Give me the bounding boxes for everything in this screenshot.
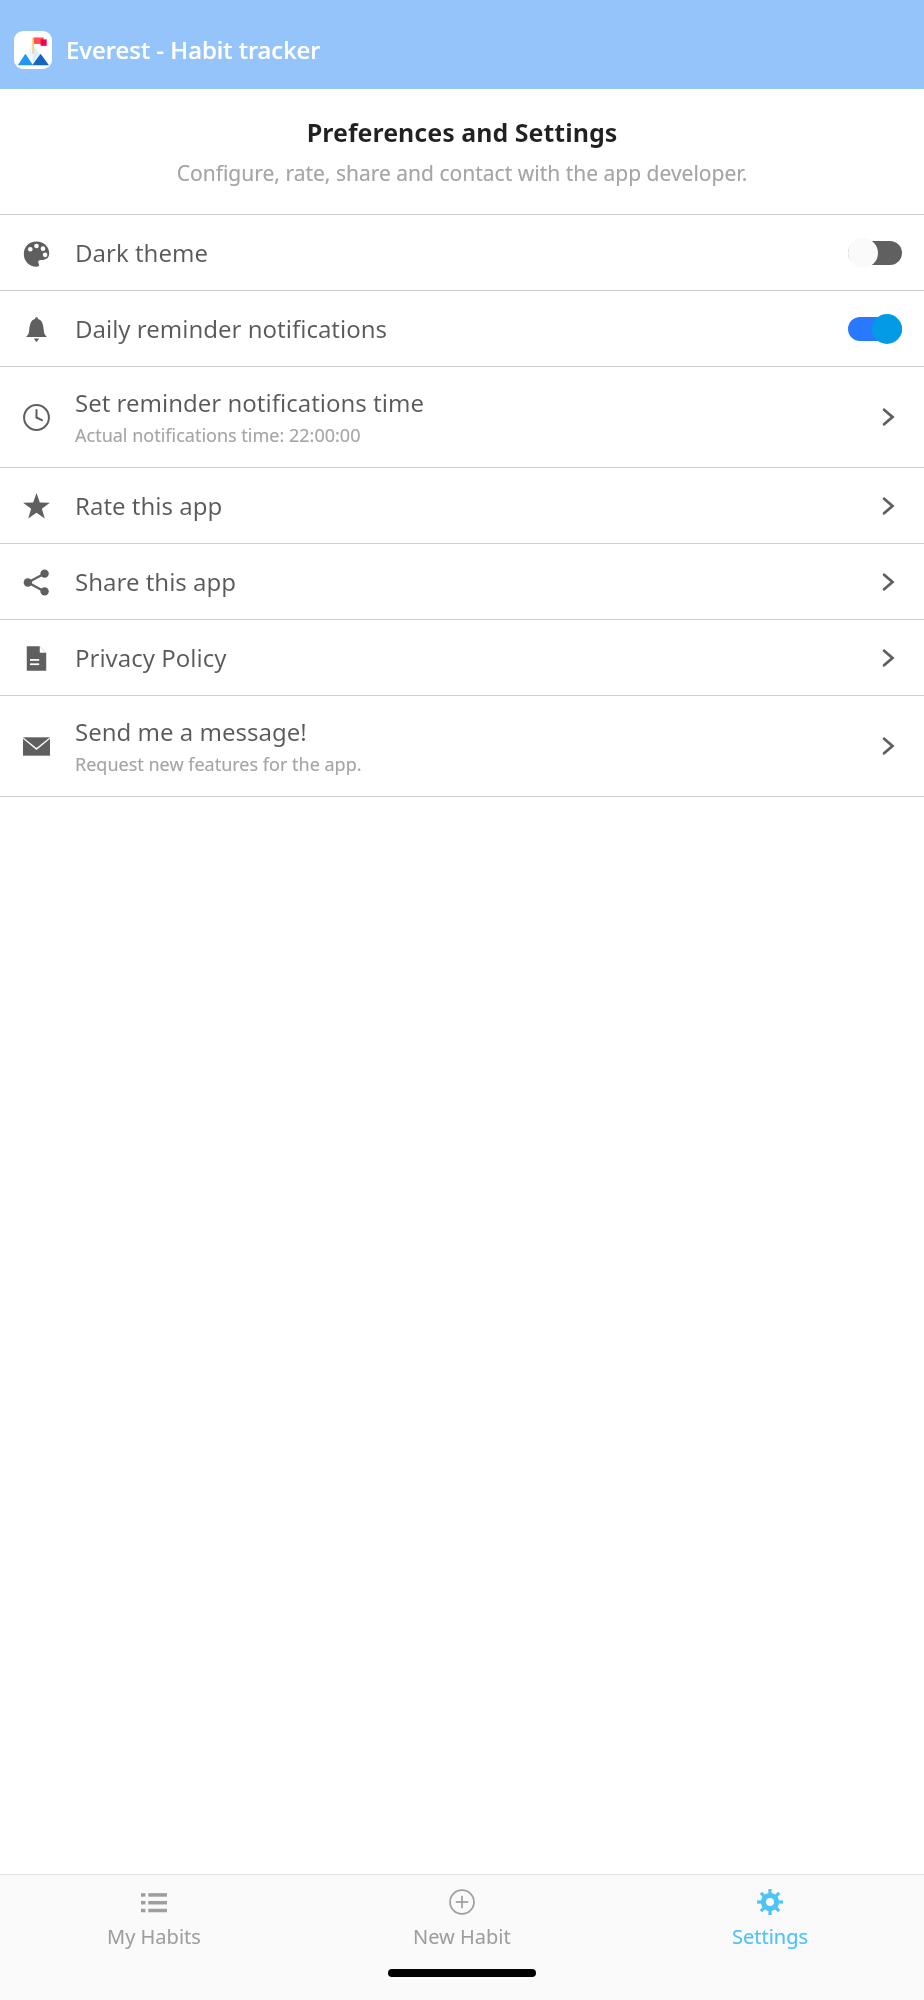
staticText: Preferences and Settings: [0, 115, 924, 149]
staticText: Configure, rate, share and contact with …: [30, 159, 894, 188]
staticText: New Habit: [413, 1923, 511, 1950]
staticText: Settings: [732, 1923, 809, 1950]
button[interactable]: Share this app: [0, 544, 924, 619]
button[interactable]: Daily reminder notifications: [0, 291, 924, 366]
staticText: Everest - Habit tracker: [66, 33, 321, 66]
button[interactable]: Set reminder notifications time: [0, 367, 924, 467]
staticText: Rate this app: [75, 489, 223, 522]
staticText: My Habits: [107, 1923, 201, 1950]
staticText: Request new features for the app.: [75, 752, 362, 777]
button[interactable]: My Habits: [0, 1875, 308, 1953]
staticText: Dark theme: [75, 236, 208, 269]
staticText: Privacy Policy: [75, 641, 227, 674]
staticText: Share this app: [75, 565, 237, 598]
button[interactable]: New Habit: [308, 1875, 616, 1953]
button[interactable]: Privacy Policy: [0, 620, 924, 695]
button[interactable]: Rate this app: [0, 468, 924, 543]
staticText: Daily reminder notifications: [75, 312, 388, 345]
button[interactable]: Dark theme: [0, 215, 924, 290]
button[interactable]: [848, 314, 902, 344]
button[interactable]: [848, 238, 902, 268]
button[interactable]: Settings: [616, 1875, 924, 1953]
staticText: Set reminder notifications time: [75, 386, 424, 419]
staticText: Send me a message!: [75, 715, 307, 748]
button[interactable]: Send me a message!: [0, 696, 924, 796]
staticText: Actual notifications time: 22:00:00: [75, 423, 361, 448]
